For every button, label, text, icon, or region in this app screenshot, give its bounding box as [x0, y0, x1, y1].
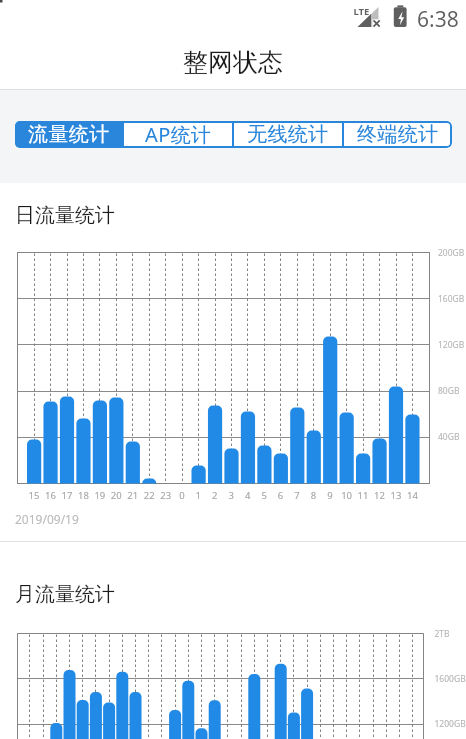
- staticText: 终端统计: [357, 122, 439, 147]
- staticText: 日流量统计: [15, 203, 115, 228]
- staticText: 无线统计: [247, 122, 329, 147]
- staticText: 月流量统计: [15, 582, 115, 607]
- staticText: 整网状态: [183, 47, 283, 78]
- button[interactable]: 流量统计: [15, 121, 122, 148]
- button[interactable]: 终端统计: [344, 121, 452, 148]
- button[interactable]: 无线统计: [234, 121, 342, 148]
- staticText: AP统计: [145, 121, 212, 148]
- staticText: 6:38: [417, 5, 459, 34]
- button[interactable]: AP统计: [124, 121, 232, 148]
- staticText: 流量统计: [28, 122, 110, 147]
- staticText: 2019/09/19: [15, 511, 79, 527]
